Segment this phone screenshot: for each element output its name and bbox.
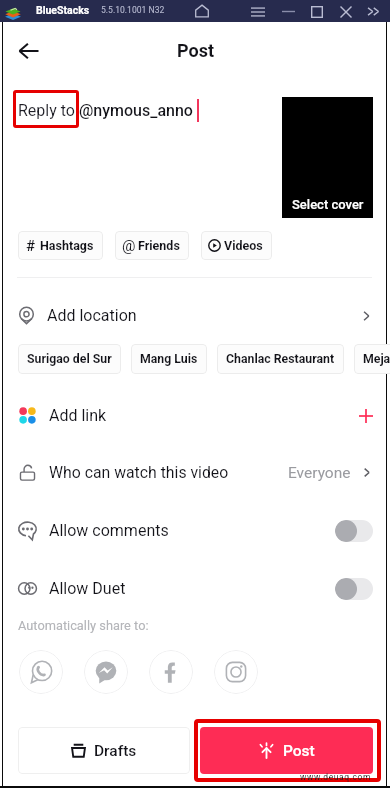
button[interactable]: Drafts [18, 727, 190, 774]
button[interactable]: More [365, 3, 382, 20]
staticText: Everyone [288, 464, 351, 482]
button[interactable]: WhatsApp [19, 650, 63, 694]
button[interactable]: Menu [249, 3, 266, 20]
button[interactable]: Back [14, 36, 44, 66]
staticText: BlueStacks [36, 4, 90, 16]
button[interactable]: Mejare [354, 344, 390, 374]
button[interactable]: Facebook [149, 650, 193, 694]
staticText: Friends [138, 238, 180, 253]
staticText: @ [122, 237, 135, 255]
staticText: Hashtags [40, 238, 94, 253]
staticText: Mejare [363, 352, 390, 366]
button[interactable]: Add location [0, 293, 390, 338]
staticText: Reply to [18, 101, 79, 120]
button[interactable]: Chanlac Restaurant [217, 344, 344, 374]
staticText: Mang Luis [140, 352, 198, 366]
staticText: 5.5.10.1001 N32 [101, 5, 165, 15]
staticText: Allow Duet [49, 579, 126, 598]
button[interactable]: Select cover [282, 97, 373, 218]
staticText: Add location [47, 306, 137, 325]
button[interactable]: Close [337, 3, 354, 20]
button[interactable]: Home [193, 2, 211, 20]
staticText: @nymous_anno [79, 101, 193, 120]
staticText: # [26, 237, 36, 255]
button[interactable]: Add link [0, 393, 390, 438]
button[interactable]: Minimize [280, 3, 297, 20]
button[interactable]: Surigao del Sur [18, 344, 121, 374]
staticText: Surigao del Sur [27, 352, 112, 366]
button[interactable]: Mang Luis [131, 344, 207, 374]
button[interactable]: Instagram [214, 650, 258, 694]
button[interactable]: Post [200, 727, 373, 774]
button[interactable]: Allow Duet [0, 566, 390, 611]
staticText: Videos [224, 238, 263, 253]
staticText: Post [283, 742, 315, 760]
button[interactable]: Who can watch this video [0, 450, 390, 495]
button[interactable]: Messenger [84, 650, 128, 694]
staticText: Post [177, 40, 214, 61]
staticText: Select cover [292, 197, 364, 212]
staticText: www.deuaq.com [300, 772, 372, 782]
staticText: Automatically share to: [18, 618, 149, 633]
button[interactable]: Allow comments [0, 508, 390, 553]
button[interactable]: Videos [201, 231, 272, 260]
staticText: Add link [49, 406, 107, 425]
button[interactable]: @ [115, 231, 189, 260]
staticText: Chanlac Restaurant [226, 352, 335, 366]
button[interactable]: # [18, 231, 103, 260]
staticText: Drafts [94, 742, 137, 760]
staticText: Who can watch this video [49, 463, 229, 482]
button[interactable]: Maximize [308, 3, 325, 20]
staticText: Allow comments [49, 521, 169, 540]
